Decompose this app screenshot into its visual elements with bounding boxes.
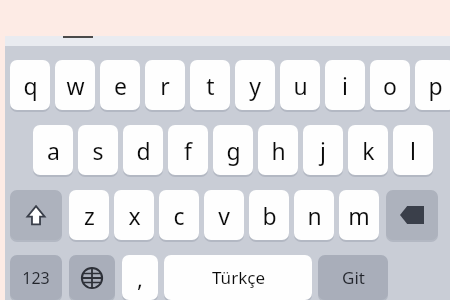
button[interactable]: x xyxy=(114,190,154,240)
button[interactable]: , xyxy=(122,255,158,300)
staticText: d xyxy=(136,135,151,166)
button[interactable]: b xyxy=(249,190,289,240)
staticText: y xyxy=(249,70,261,101)
button[interactable]: q xyxy=(10,60,50,110)
button[interactable]: v xyxy=(204,190,244,240)
staticText: w xyxy=(66,70,85,101)
button[interactable]: r xyxy=(145,60,185,110)
staticText: s xyxy=(92,135,104,166)
staticText: h xyxy=(271,135,286,166)
button[interactable]: n xyxy=(294,190,334,240)
staticText: Türkçe xyxy=(212,266,265,289)
button[interactable]: l xyxy=(393,125,433,175)
button[interactable]: p xyxy=(415,60,450,110)
staticText: e xyxy=(114,70,127,101)
staticText: t xyxy=(206,70,215,101)
staticText: f xyxy=(184,135,192,166)
staticText: x xyxy=(128,200,141,231)
button[interactable]: Shift xyxy=(10,190,62,240)
button[interactable]: Backspace xyxy=(386,190,438,240)
button[interactable]: t xyxy=(190,60,230,110)
button[interactable]: z xyxy=(69,190,109,240)
button[interactable]: Türkçe xyxy=(164,255,312,300)
button[interactable]: o xyxy=(370,60,410,110)
staticText: r xyxy=(160,70,170,101)
staticText: m xyxy=(348,200,370,231)
staticText: , xyxy=(137,263,143,293)
button[interactable]: Change keyboard language xyxy=(69,255,115,300)
staticText: j xyxy=(320,135,326,166)
button[interactable]: j xyxy=(303,125,343,175)
button[interactable]: i xyxy=(325,60,365,110)
staticText: z xyxy=(84,200,95,231)
button[interactable]: Git xyxy=(318,255,388,300)
staticText: Git xyxy=(342,266,365,289)
staticText: q xyxy=(23,70,38,101)
button[interactable]: k xyxy=(348,125,388,175)
button[interactable]: w xyxy=(55,60,95,110)
button[interactable]: f xyxy=(168,125,208,175)
button[interactable]: g xyxy=(213,125,253,175)
staticText: c xyxy=(173,200,185,231)
staticText: l xyxy=(410,135,416,166)
button[interactable]: a xyxy=(33,125,73,175)
staticText: b xyxy=(262,200,277,231)
staticText: v xyxy=(218,200,230,231)
button[interactable]: d xyxy=(123,125,163,175)
staticText: p xyxy=(428,70,443,101)
button[interactable]: m xyxy=(339,190,379,240)
staticText: o xyxy=(383,70,397,101)
staticText: n xyxy=(307,200,322,231)
staticText: u xyxy=(293,70,308,101)
staticText: k xyxy=(362,135,375,166)
button[interactable]: h xyxy=(258,125,298,175)
staticText: 123 xyxy=(22,267,50,289)
button[interactable]: u xyxy=(280,60,320,110)
button[interactable]: c xyxy=(159,190,199,240)
button[interactable]: e xyxy=(100,60,140,110)
staticText: i xyxy=(342,70,348,101)
staticText: g xyxy=(226,135,241,166)
button[interactable]: s xyxy=(78,125,118,175)
button[interactable]: y xyxy=(235,60,275,110)
button[interactable]: 123 xyxy=(10,255,62,300)
staticText: a xyxy=(47,135,60,166)
